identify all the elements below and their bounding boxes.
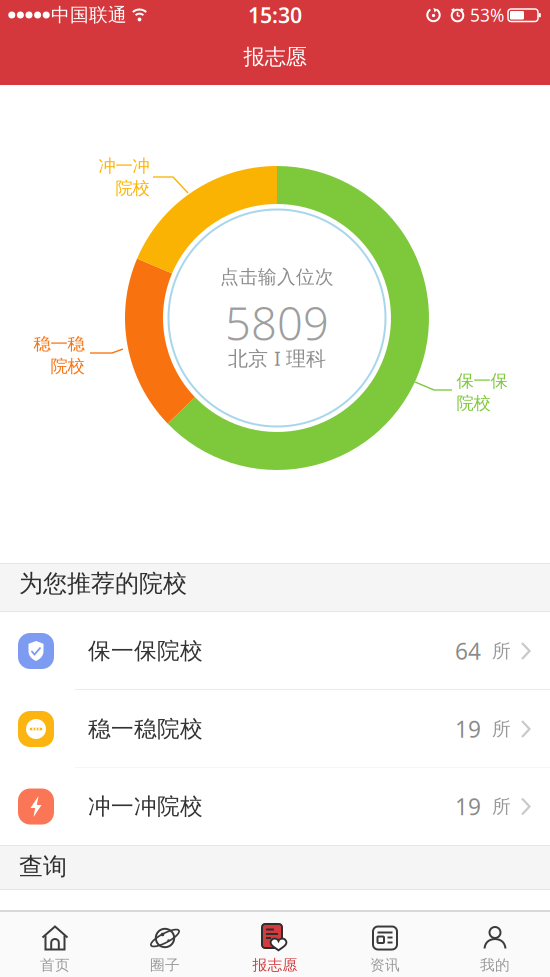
- button[interactable]: 冲一冲院校: [0, 767, 550, 845]
- staticText: 查询: [19, 852, 67, 881]
- staticText: 15:30: [248, 1, 302, 29]
- staticText: 报志愿: [252, 956, 297, 974]
- staticText: 院校: [50, 355, 84, 377]
- staticText: 64: [455, 636, 481, 666]
- staticText: 资讯: [370, 956, 400, 974]
- button[interactable]: 资讯: [330, 911, 440, 977]
- button[interactable]: 首页: [0, 911, 110, 977]
- staticText: 稳一稳院校: [88, 715, 203, 743]
- staticText: 所: [492, 717, 511, 740]
- staticText: 圈子: [150, 956, 180, 974]
- button[interactable]: 我的: [440, 911, 550, 977]
- button[interactable]: 圈子: [110, 911, 220, 977]
- staticText: 保一保院校: [88, 637, 203, 665]
- staticText: 保一保: [456, 370, 507, 391]
- staticText: 冲一冲: [98, 155, 149, 176]
- staticText: 点击输入位次: [220, 265, 334, 288]
- staticText: 中国联通: [51, 3, 127, 26]
- staticText: 我的: [480, 956, 510, 974]
- staticText: 冲一冲院校: [88, 793, 203, 820]
- staticText: 首页: [40, 956, 70, 974]
- staticText: 为您推荐的院校: [19, 569, 187, 598]
- button[interactable]: 报志愿: [220, 911, 330, 977]
- staticText: 报志愿: [243, 44, 306, 70]
- staticText: 所: [492, 639, 511, 662]
- staticText: 5809: [225, 293, 329, 353]
- staticText: 院校: [456, 392, 490, 414]
- staticText: 北京 I 理科: [228, 345, 326, 371]
- button[interactable]: 稳一稳院校: [0, 690, 550, 768]
- staticText: 19: [455, 714, 481, 744]
- staticText: 53%: [470, 3, 504, 26]
- staticText: 院校: [115, 177, 149, 199]
- staticText: 稳一稳: [33, 333, 84, 354]
- staticText: 所: [492, 795, 511, 818]
- staticText: 19: [455, 791, 481, 821]
- button[interactable]: 点击输入位次: [167, 208, 387, 428]
- button[interactable]: 保一保院校: [0, 612, 550, 690]
